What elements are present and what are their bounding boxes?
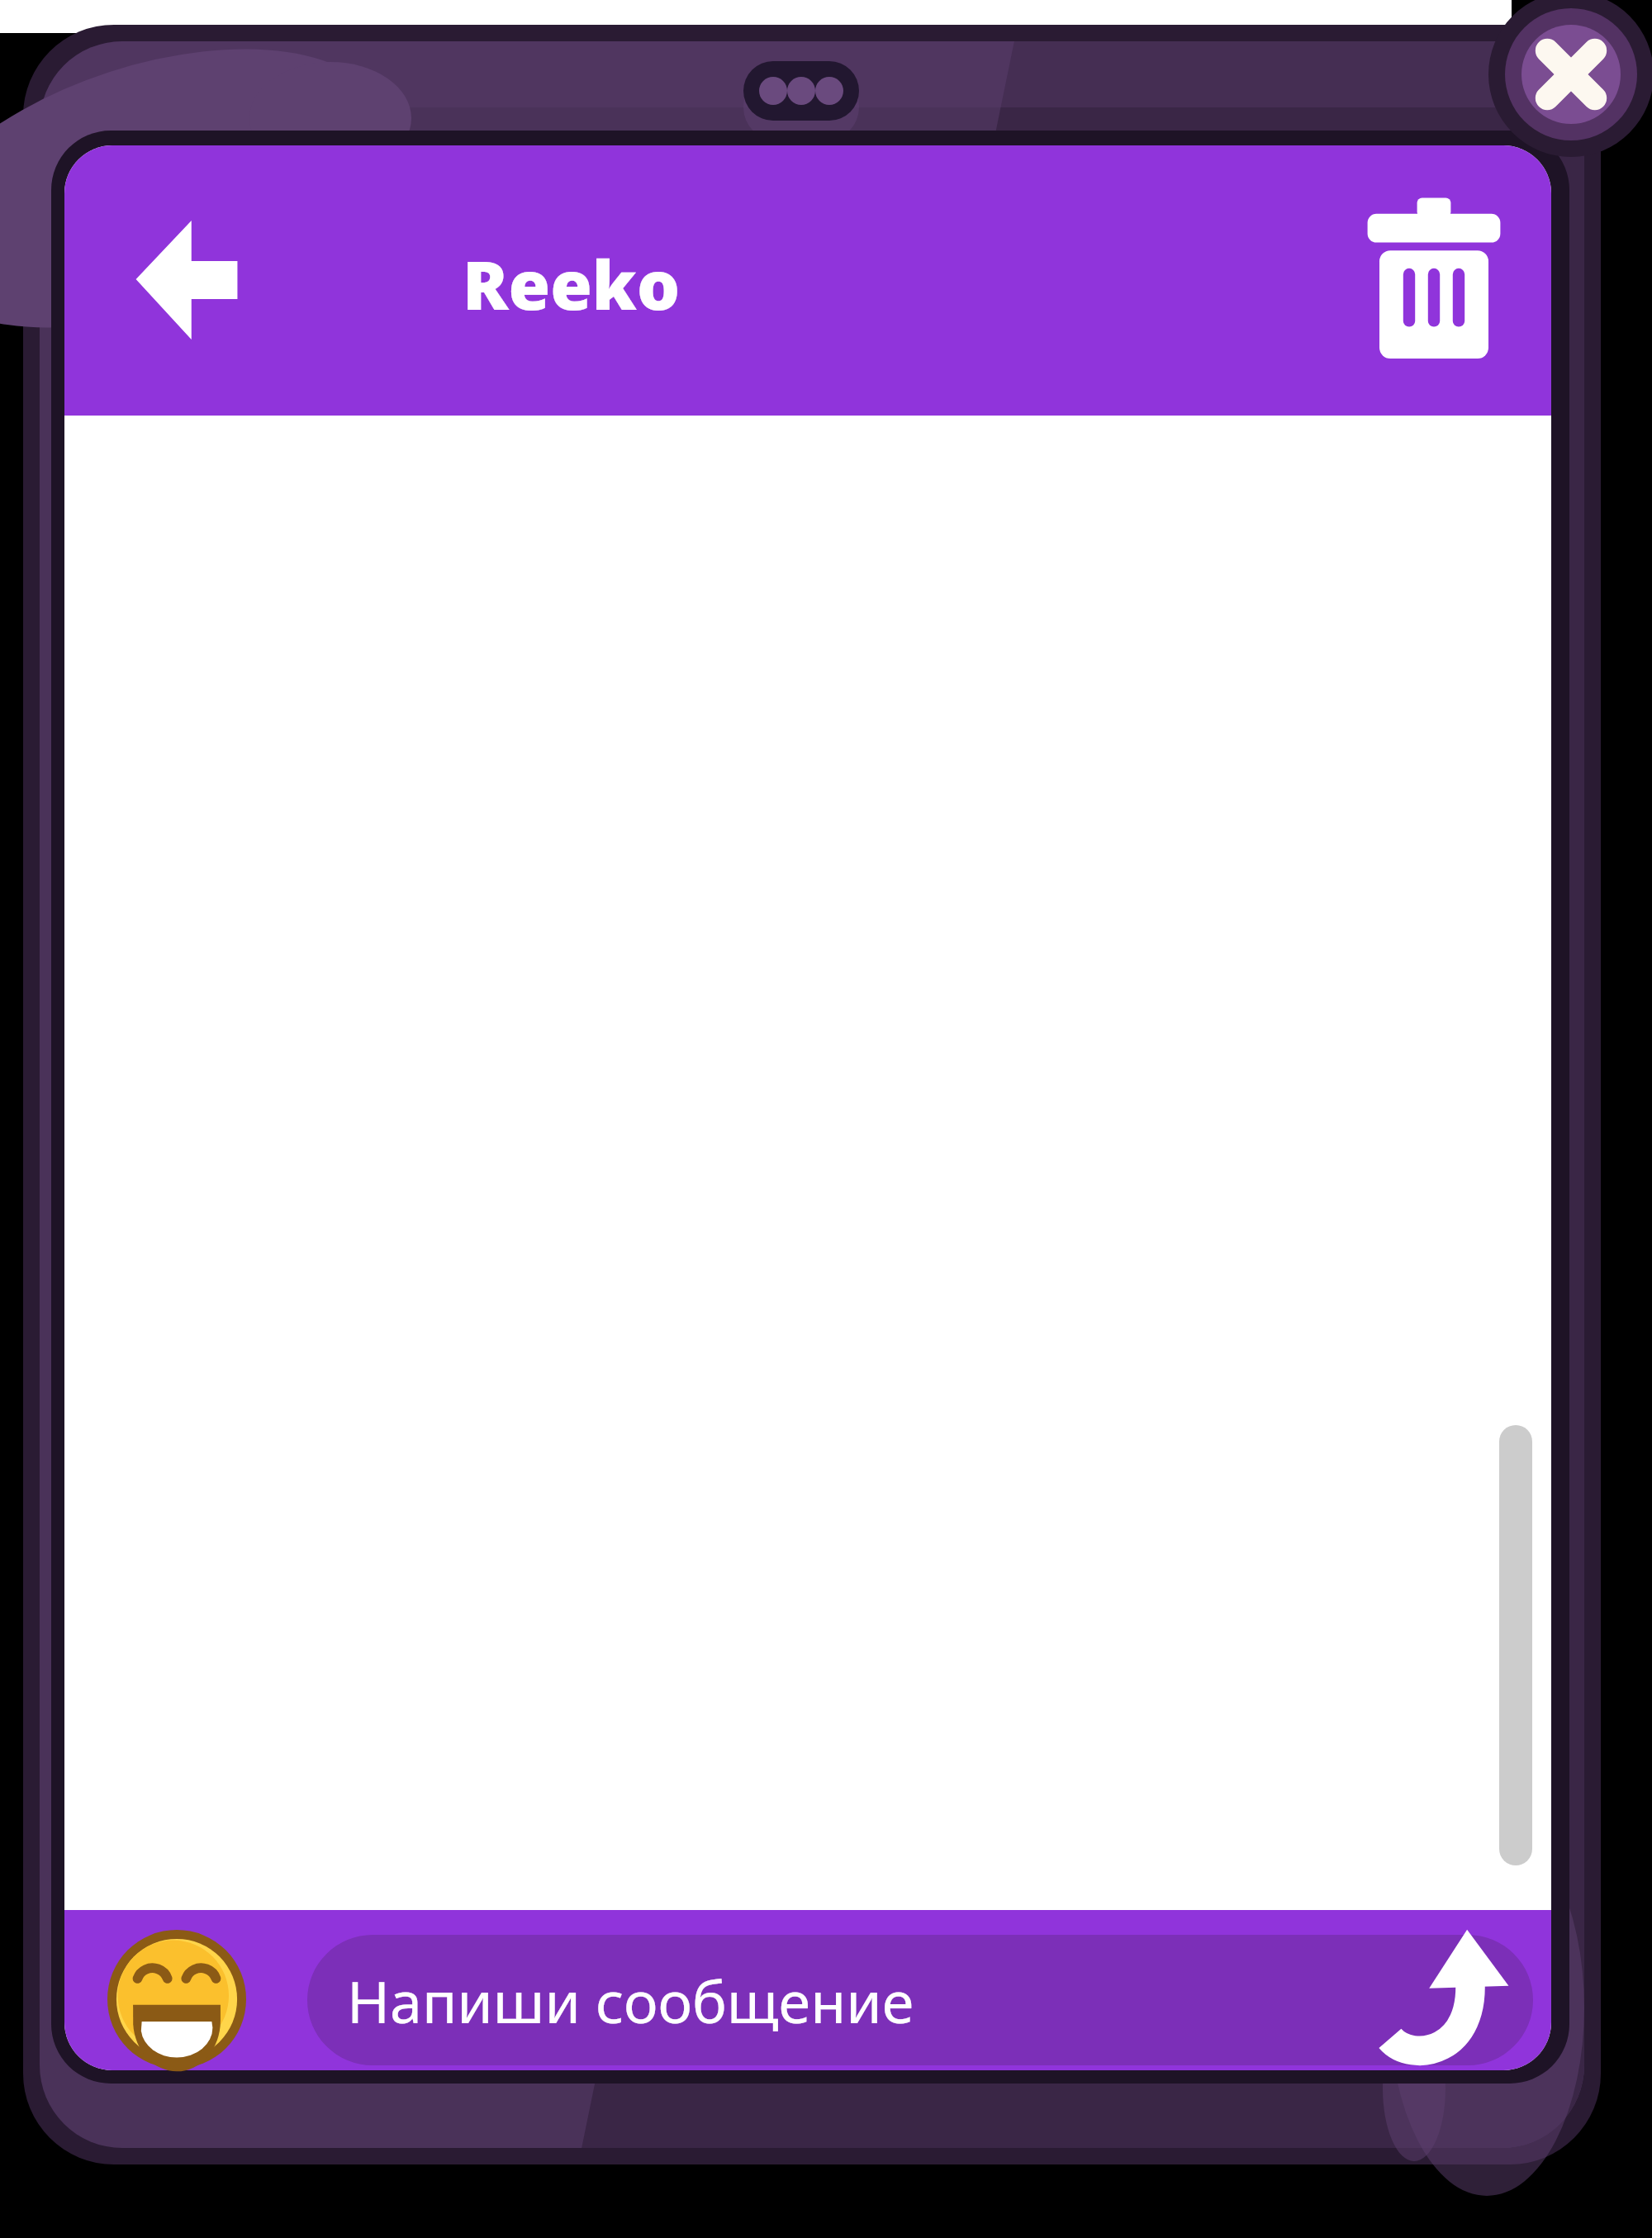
button[interactable]: Delete chat	[1361, 205, 1512, 355]
button[interactable]: Emoji	[104, 1927, 251, 2074]
button[interactable]: Send	[1378, 1936, 1510, 2065]
staticText: Напиши сообщение	[347, 1961, 914, 2040]
button[interactable]: Back	[116, 205, 273, 355]
button[interactable]: Close	[1488, 0, 1652, 159]
staticText: Reeko	[463, 237, 681, 330]
button[interactable]	[307, 1935, 1533, 2067]
